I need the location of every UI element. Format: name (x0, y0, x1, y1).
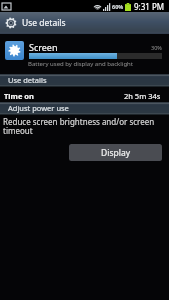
button[interactable]: Settings (0, 12, 169, 34)
staticText: 2h 5m 34s (124, 91, 161, 101)
staticText: Reduce screen brightness and/or screen t… (3, 116, 163, 137)
staticText: 9:31 PM (134, 1, 165, 12)
staticText: Battery used by display and backlight (28, 60, 133, 68)
other: Settings (5, 17, 17, 29)
button[interactable]: Time on (0, 87, 169, 102)
staticText: Screen (29, 41, 58, 53)
staticText: Adjust power use (8, 103, 69, 113)
staticText: Time on (4, 91, 34, 101)
staticText: Display (101, 147, 130, 159)
staticText: Use details (8, 75, 47, 85)
button[interactable]: Screen (0, 34, 169, 74)
staticText: Use details (22, 17, 66, 29)
staticText: 30% (151, 44, 162, 51)
staticText: 60% (112, 3, 124, 10)
button[interactable]: Display (69, 144, 162, 161)
